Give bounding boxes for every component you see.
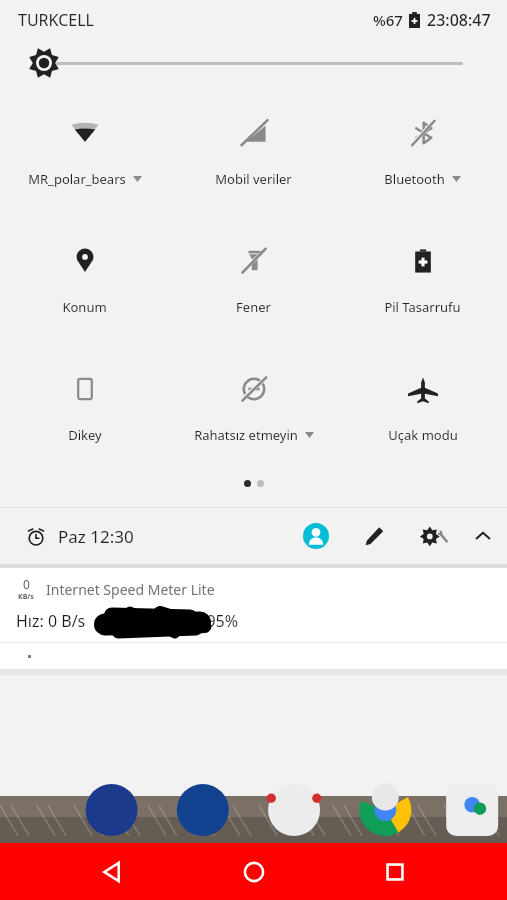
staticText: 23:08:47 <box>427 9 491 31</box>
staticText: KB/s <box>18 592 34 602</box>
button[interactable]: Rahatsız etmeyin <box>169 370 338 446</box>
button[interactable]: MR_polar_bears <box>0 114 169 190</box>
staticText: Dikey <box>68 426 102 444</box>
staticText: MR_polar_bears <box>28 170 126 188</box>
button[interactable]: Paz 12:30 <box>26 525 134 548</box>
button[interactable]: User <box>303 523 329 549</box>
staticText: Internet Speed Meter Lite <box>46 580 215 599</box>
staticText: Mobil veriler <box>215 170 292 188</box>
button[interactable]: Bluetooth <box>338 114 507 190</box>
button[interactable]: Mobil veriler <box>169 114 338 190</box>
button[interactable]: Fener <box>169 242 338 318</box>
staticText: Rahatsız etmeyin <box>194 426 298 444</box>
button[interactable]: Konum <box>0 242 169 318</box>
button[interactable]: 0 <box>0 576 507 602</box>
staticText: Paz 12:30 <box>58 525 134 548</box>
button[interactable]: Edit <box>363 525 385 547</box>
staticText: TURKCELL <box>18 9 94 31</box>
button[interactable]: Pil Tasarrufu <box>338 242 507 318</box>
button[interactable]: Uçak modu <box>338 370 507 446</box>
staticText: %67 <box>373 10 403 30</box>
staticText: Uçak modu <box>388 426 458 444</box>
staticText: Konum <box>62 298 107 316</box>
staticText: Hız: 0 B/s <box>16 610 86 632</box>
staticText: Bluetooth <box>384 170 445 188</box>
staticText: 0 <box>23 576 30 592</box>
button[interactable]: Settings <box>419 525 449 547</box>
button[interactable]: Back <box>82 843 142 900</box>
button[interactable]: Recents <box>365 843 425 900</box>
button[interactable]: Dikey <box>0 370 169 446</box>
button[interactable]: Collapse <box>473 526 493 546</box>
staticText: Fener <box>236 298 271 316</box>
staticText: Pil Tasarrufu <box>384 298 461 316</box>
button[interactable]: Home <box>224 843 284 900</box>
button[interactable]: Brightness <box>27 46 61 80</box>
staticText: . 95% <box>198 610 239 632</box>
